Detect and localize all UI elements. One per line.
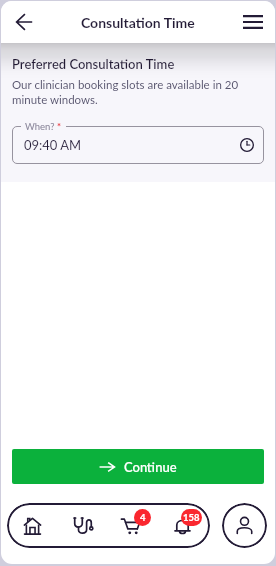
button[interactable]: Continue (12, 449, 264, 484)
staticText: 4 (140, 512, 146, 523)
staticText: Our clinician booking slots are availabl… (12, 78, 264, 107)
button[interactable]: Back (8, 6, 40, 38)
staticText: 158 (183, 512, 200, 523)
button[interactable]: Home (10, 503, 54, 548)
button[interactable]: Notifications (163, 503, 207, 548)
staticText: 09:40 AM (24, 137, 82, 153)
button[interactable]: Cart (112, 503, 156, 548)
staticText: Consultation Time (81, 14, 195, 31)
staticText: * (57, 121, 62, 132)
button[interactable]: Profile (222, 503, 267, 548)
staticText: When? (25, 121, 55, 132)
button[interactable]: 09:40 AM (12, 126, 264, 164)
staticText: Continue (124, 459, 177, 475)
button[interactable]: Menu (237, 6, 269, 38)
staticText: Preferred Consultation Time (12, 56, 175, 72)
button[interactable]: Consultations (61, 503, 105, 548)
